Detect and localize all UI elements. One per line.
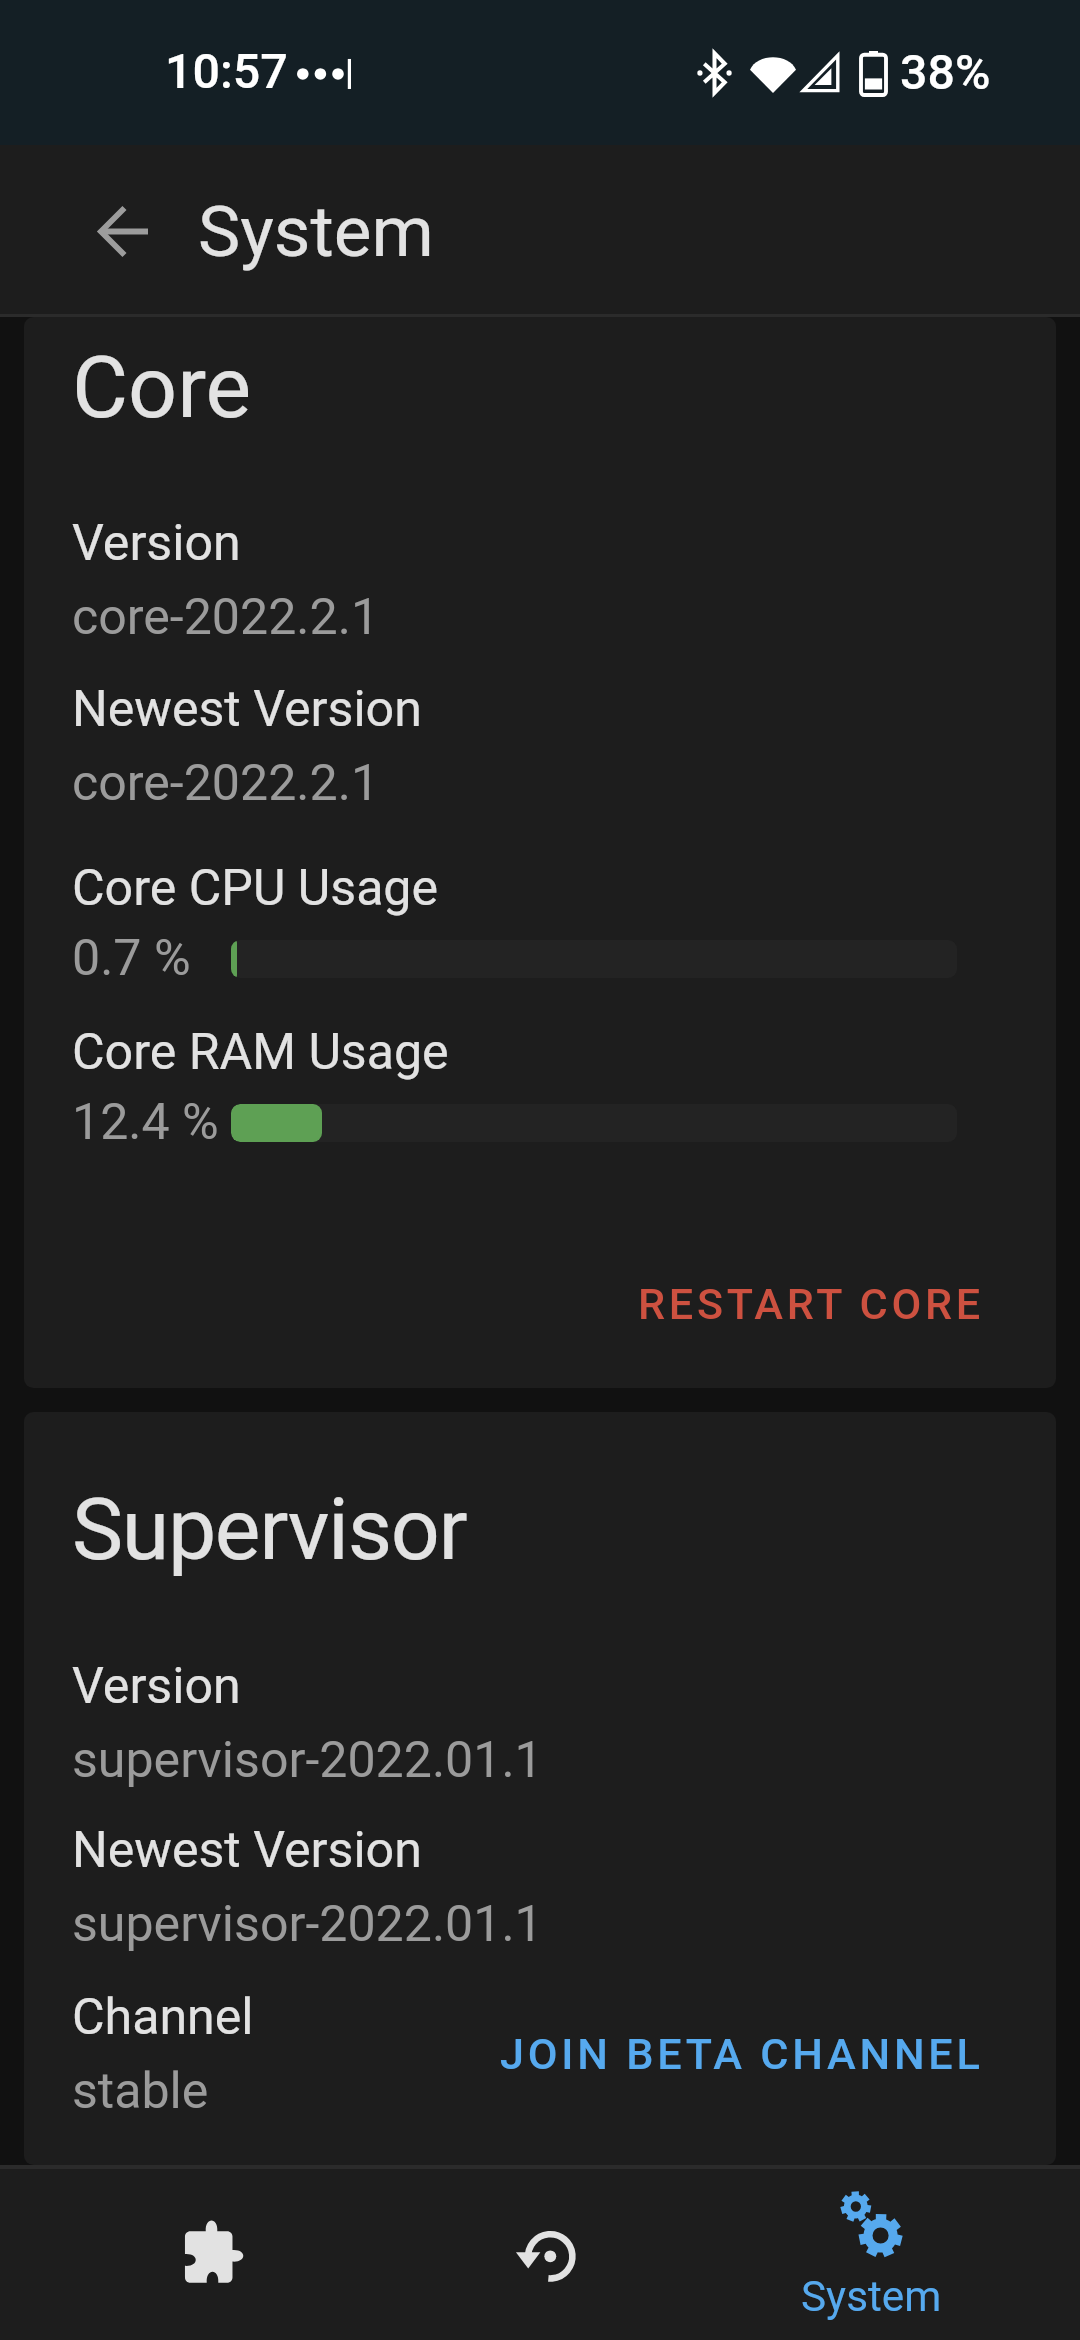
staticText: System [198, 190, 434, 273]
staticText: Supervisor [72, 1479, 467, 1580]
staticText: RESTART CORE [638, 1279, 984, 1330]
staticText: Version [72, 1657, 241, 1716]
staticText: Version [72, 514, 241, 573]
staticText: stable [72, 2062, 209, 2121]
staticText: 38% [900, 44, 991, 101]
button[interactable]: JOIN BETA CHANNEL [476, 2011, 1008, 2098]
staticText: Core RAM Usage [72, 1023, 449, 1082]
staticText: Newest Version [72, 680, 422, 739]
staticText: Channel [72, 1988, 254, 2047]
staticText: supervisor-2022.01.1 [72, 1731, 543, 1790]
staticText: Newest Version [72, 1821, 422, 1880]
staticText: Core [72, 337, 252, 438]
staticText: core-2022.2.1 [72, 754, 380, 813]
button[interactable]: Back [51, 159, 195, 303]
staticText: core-2022.2.1 [72, 588, 380, 647]
staticText: 12.4 % [72, 1093, 219, 1152]
staticText: 0.7 % [72, 929, 191, 988]
button[interactable]: System [662, 2165, 1080, 2340]
staticText: Core CPU Usage [72, 859, 439, 918]
staticText: supervisor-2022.01.1 [72, 1895, 543, 1954]
button[interactable]: Snapshots [428, 2165, 662, 2340]
button[interactable]: Add-ons [0, 2165, 428, 2340]
staticText: JOIN BETA CHANNEL [500, 2029, 984, 2080]
staticText: System [801, 2272, 942, 2322]
button[interactable]: RESTART CORE [614, 1261, 1008, 1348]
staticText: 10:57 [165, 43, 288, 100]
